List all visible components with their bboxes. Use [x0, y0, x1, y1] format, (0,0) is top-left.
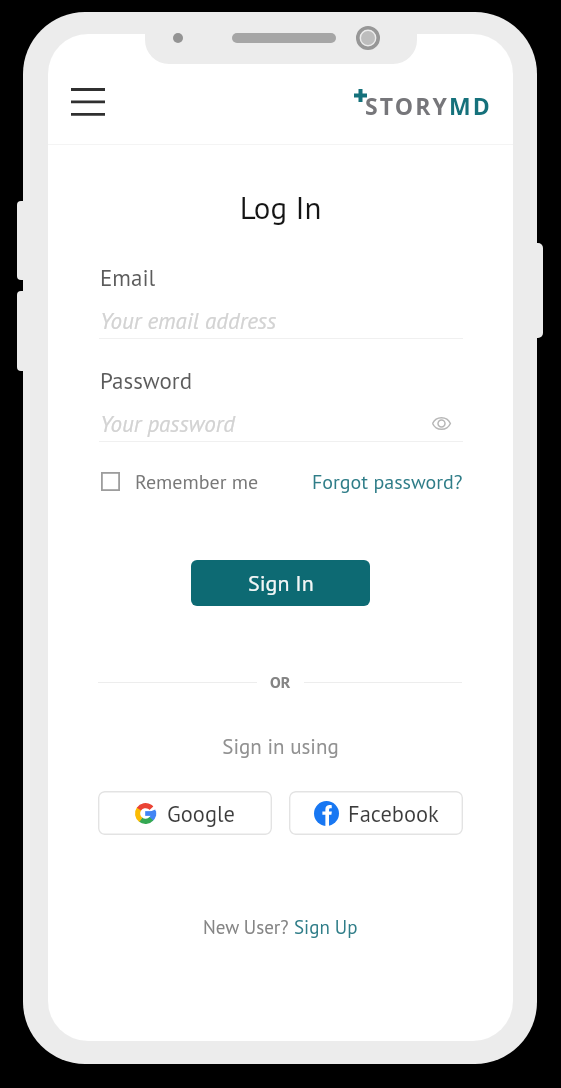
staticText: OR [270, 672, 291, 693]
staticText: Your email address [100, 306, 277, 336]
staticText: Sign Up [294, 915, 358, 940]
staticText: MD [449, 90, 492, 121]
button[interactable]: Show password [422, 407, 460, 439]
button[interactable]: Remember me [101, 466, 259, 497]
staticText: Facebook [348, 799, 439, 828]
button[interactable]: Google [98, 791, 272, 835]
button[interactable]: Facebook [289, 791, 463, 835]
staticText: Sign In [248, 569, 314, 597]
staticText: Google [167, 799, 235, 828]
button[interactable]: Forgot password? [312, 466, 463, 497]
staticText: Email [100, 263, 156, 293]
staticText: New User? [203, 915, 294, 940]
staticText: Forgot password? [312, 469, 463, 494]
button[interactable]: Sign Up [294, 915, 358, 940]
button[interactable]: Open navigation menu [63, 66, 113, 124]
staticText: Your password [100, 409, 235, 439]
staticText: STORY [365, 90, 449, 121]
staticText: Log In [48, 187, 513, 227]
staticText: Remember me [135, 469, 259, 494]
button[interactable]: StoryMD home [348, 74, 494, 112]
staticText: Password [100, 366, 193, 396]
staticText: Sign in using [48, 733, 513, 760]
button[interactable]: Sign In [191, 560, 370, 606]
button[interactable]: Email field [99, 332, 463, 342]
